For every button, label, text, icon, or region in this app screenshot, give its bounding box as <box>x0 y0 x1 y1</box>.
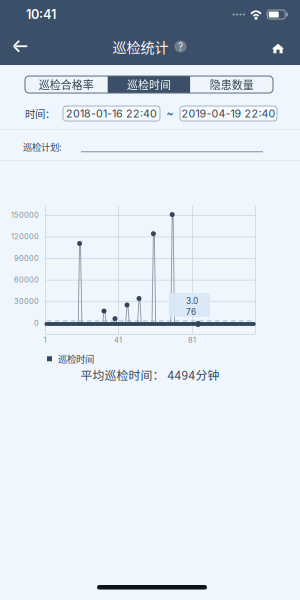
button[interactable]: 巡检时间 <box>108 76 190 93</box>
staticText: ~ <box>166 107 173 120</box>
staticText: 平均巡检时间： 4494分钟 <box>80 366 219 383</box>
staticText: 2018-01-16 22:40 <box>66 107 157 120</box>
staticText: 10:41 <box>26 7 56 22</box>
button[interactable]: Help <box>173 39 187 53</box>
staticText: 巡检时间 <box>58 352 94 365</box>
staticText: 81 <box>188 335 196 344</box>
staticText: 2019-04-19 22:40 <box>181 107 275 120</box>
staticText: ? <box>178 40 183 53</box>
button[interactable]: 隐患数量 <box>190 76 273 93</box>
staticText: 0 <box>34 318 39 327</box>
staticText: 巡检统计 <box>112 36 168 57</box>
staticText: 150000 <box>11 210 39 219</box>
staticText: 41 <box>114 335 122 344</box>
staticText: 巡检合格率 <box>39 77 94 92</box>
staticText: 76 <box>186 307 196 317</box>
staticText: 120000 <box>11 232 39 241</box>
button[interactable]: 巡检合格率 <box>25 76 108 93</box>
button[interactable]: Back <box>0 28 40 64</box>
staticText: 30000 <box>14 297 39 306</box>
staticText: 时间： <box>25 106 55 121</box>
staticText: 隐患数量 <box>210 77 254 92</box>
button[interactable]: Home <box>254 28 296 64</box>
staticText: 90000 <box>14 254 39 263</box>
button[interactable]: 2019-04-19 22:40 <box>180 106 277 121</box>
staticText: 巡检时间 <box>127 77 171 92</box>
staticText: 3.0 <box>186 296 198 306</box>
staticText: 1 <box>43 335 46 344</box>
staticText: 巡检计划: <box>23 140 62 153</box>
button[interactable]: 2018-01-16 22:40 <box>63 106 160 121</box>
staticText: 60000 <box>14 275 39 284</box>
